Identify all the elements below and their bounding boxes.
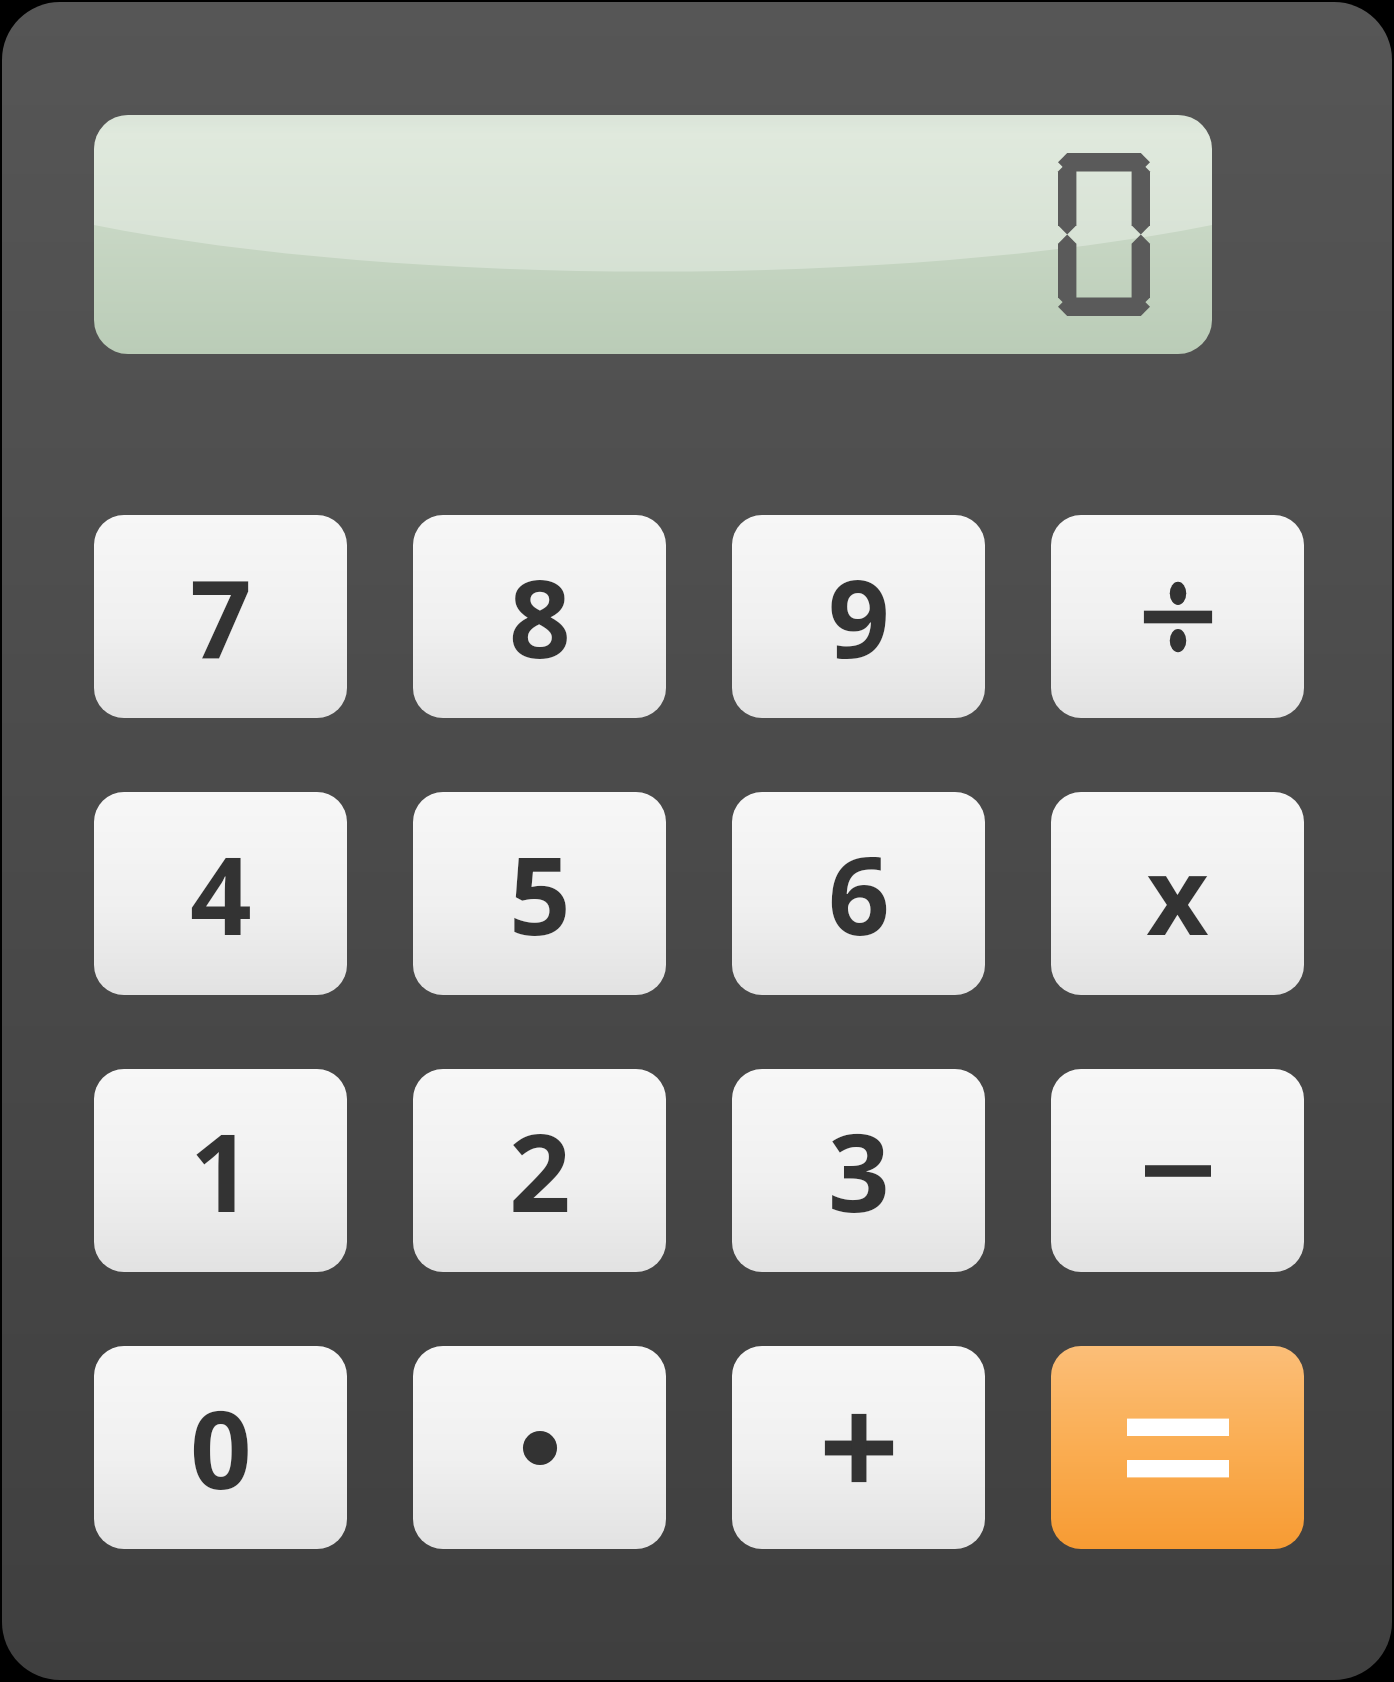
button[interactable]: 8 [413, 515, 666, 718]
staticText: 4 [190, 820, 252, 967]
staticText: 8 [509, 543, 571, 690]
button[interactable]: 2 [413, 1069, 666, 1272]
staticText: 5 [509, 820, 571, 967]
button[interactable]: 4 [94, 792, 347, 995]
staticText: 7 [190, 543, 252, 690]
button[interactable]: Decimal point [413, 1346, 666, 1549]
staticText: 9 [828, 543, 890, 690]
button[interactable]: 0 [94, 1346, 347, 1549]
staticText: x [1146, 820, 1209, 967]
button[interactable]: Equals [1051, 1346, 1304, 1549]
button[interactable]: 6 [732, 792, 985, 995]
button[interactable]: Plus [732, 1346, 985, 1549]
staticText: 1 [190, 1097, 252, 1244]
button[interactable]: Divide [1051, 515, 1304, 718]
staticText: 2 [509, 1097, 571, 1244]
staticText: 0 [190, 1374, 252, 1521]
button[interactable]: Minus [1051, 1069, 1304, 1272]
button[interactable]: 7 [94, 515, 347, 718]
staticText: 6 [828, 820, 890, 967]
button[interactable]: 3 [732, 1069, 985, 1272]
button[interactable]: 5 [413, 792, 666, 995]
staticText: 3 [828, 1097, 890, 1244]
button[interactable]: 9 [732, 515, 985, 718]
button[interactable]: x [1051, 792, 1304, 995]
button[interactable]: 1 [94, 1069, 347, 1272]
